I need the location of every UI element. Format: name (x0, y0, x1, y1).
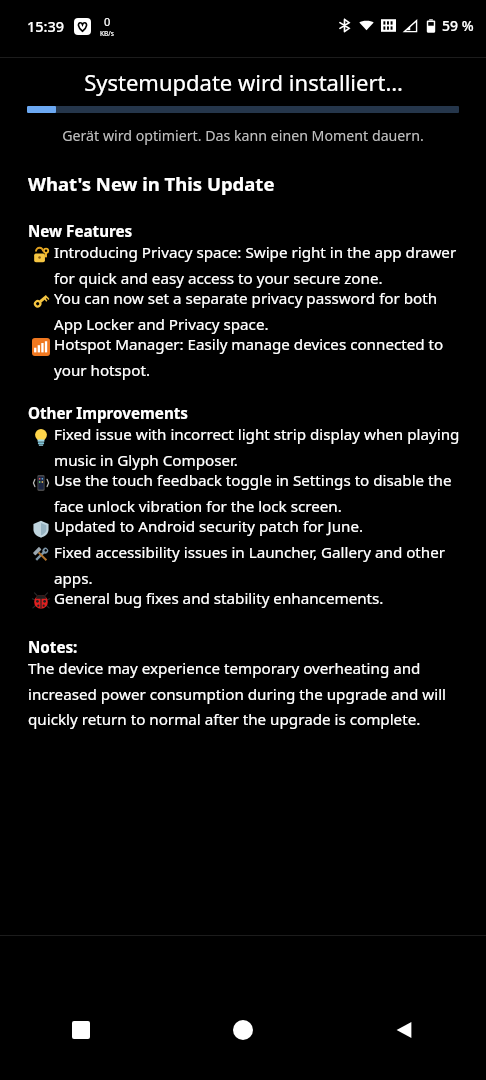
button[interactable]: Home (162, 1002, 324, 1058)
button[interactable]: Back (324, 1002, 486, 1058)
staticText: General bug fixes and stability enhancem… (54, 588, 384, 609)
staticText: Fixed accessibility issues in Launcher, … (54, 542, 464, 588)
staticText: Notes: (28, 637, 78, 658)
button[interactable]: Recent apps (0, 1002, 162, 1058)
staticText: 15:39 (27, 16, 65, 36)
staticText: 59 % (442, 16, 474, 35)
staticText: Use the touch feedback toggle in Setting… (54, 470, 464, 516)
staticText: Other Improvements (28, 403, 188, 424)
staticText: The device may experience temporary over… (28, 658, 464, 729)
staticText: Systemupdate wird installiert… (84, 67, 403, 97)
staticText: New Features (28, 221, 133, 242)
staticText: KB/s (100, 29, 114, 38)
staticText: Updated to Android security patch for Ju… (54, 516, 364, 537)
staticText: Hotspot Manager: Easily manage devices c… (54, 334, 464, 380)
staticText: What's New in This Update (28, 171, 275, 196)
staticText: Gerät wird optimiert. Das kann einen Mom… (0, 126, 486, 145)
staticText: Fixed issue with incorrect light strip d… (54, 424, 464, 470)
staticText: Introducing Privacy space: Swipe right i… (54, 242, 464, 288)
staticText: 0 (104, 14, 111, 29)
staticText: You can now set a separate privacy passw… (54, 288, 464, 334)
